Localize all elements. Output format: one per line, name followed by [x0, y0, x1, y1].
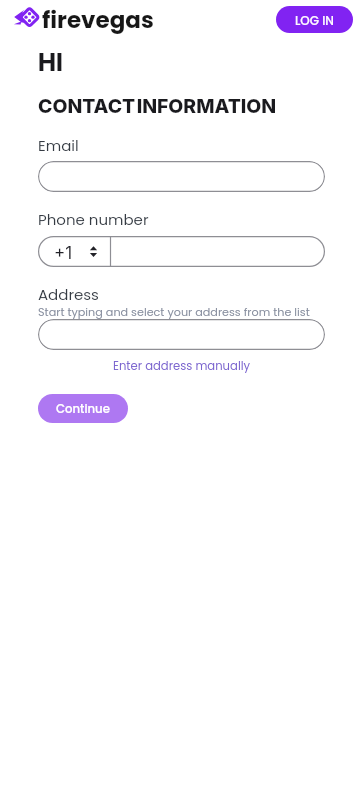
staticText: Continue	[56, 401, 110, 417]
staticText: Address	[38, 284, 99, 305]
button[interactable]	[38, 319, 325, 350]
staticText: HI	[38, 48, 63, 77]
staticText: firevegas	[42, 4, 154, 36]
button[interactable]: Enter address manually	[107, 355, 257, 377]
staticText: Email	[38, 135, 79, 156]
staticText: Start typing and select your address fro…	[38, 304, 310, 320]
staticText: +1	[54, 243, 73, 264]
button[interactable]: LOG IN	[276, 6, 353, 33]
staticText: Phone number	[38, 209, 149, 230]
button[interactable]: Continue	[38, 394, 128, 423]
button[interactable]	[38, 161, 325, 192]
button[interactable]: +1	[38, 236, 325, 267]
staticText: LOG IN	[295, 12, 334, 29]
other: firevegas logo	[12, 6, 40, 29]
staticText: CONTACT INFORMATION	[38, 94, 277, 117]
